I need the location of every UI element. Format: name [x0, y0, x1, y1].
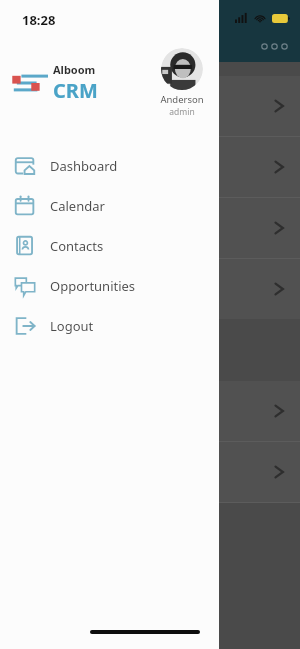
staticText: Alboom — [53, 62, 96, 77]
staticText: Opportunities — [50, 277, 136, 295]
button[interactable] — [0, 442, 300, 502]
button[interactable] — [0, 259, 300, 319]
button[interactable] — [0, 198, 300, 258]
button[interactable]: Calendar — [0, 186, 219, 226]
button[interactable]: Logout — [0, 306, 219, 346]
button[interactable] — [0, 381, 300, 441]
staticText: 18:28 — [22, 11, 56, 29]
button[interactable]: Contacts — [0, 226, 219, 266]
staticText: Anderson — [160, 93, 204, 106]
staticText: Notifications — [122, 624, 179, 637]
button[interactable]: Opportunities — [0, 266, 219, 306]
staticText: Calendar — [50, 197, 105, 215]
staticText: Dashboard — [50, 157, 118, 175]
staticText: CRM — [53, 77, 98, 104]
button[interactable] — [0, 137, 300, 197]
staticText: Contacts — [50, 237, 104, 255]
staticText: Logout — [50, 317, 94, 335]
staticText: admin — [169, 106, 195, 118]
button[interactable]: Anderson — [151, 48, 213, 118]
button[interactable]: Dashboard — [0, 146, 219, 186]
button[interactable]: 2 — [0, 587, 300, 649]
button[interactable]: More options — [257, 39, 292, 54]
button[interactable] — [0, 76, 300, 136]
